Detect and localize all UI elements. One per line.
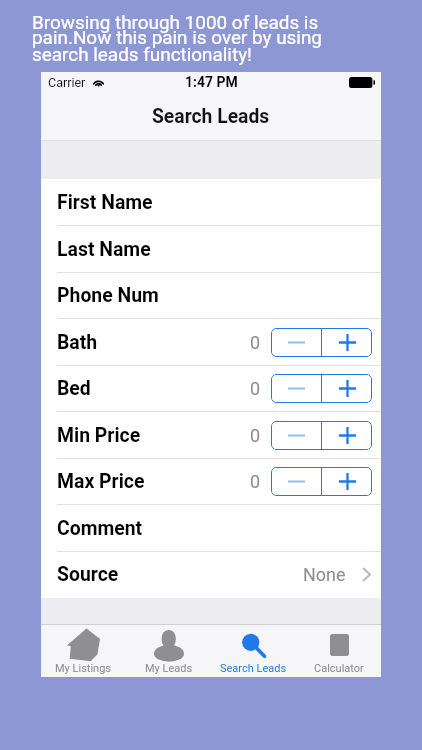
staticText: None <box>303 564 346 585</box>
staticText: Bath <box>57 331 98 354</box>
button[interactable]: Decrease <box>271 421 321 450</box>
staticText: 0 <box>250 378 261 399</box>
button[interactable]: Increase <box>322 328 372 357</box>
staticText: Bed <box>57 377 91 400</box>
staticText: Comment <box>57 517 143 540</box>
staticText: search leads functionality! <box>32 43 252 65</box>
button[interactable]: Last Name <box>41 226 381 273</box>
staticText: pain.Now this pain is over by using <box>32 26 322 48</box>
staticText: 1:47 PM <box>185 74 238 90</box>
staticText: Min Price <box>57 424 141 447</box>
button[interactable]: Calculator <box>296 625 381 677</box>
staticText: Phone Num <box>57 284 159 307</box>
staticText: Carrier <box>48 75 86 90</box>
button[interactable]: Phone Num <box>41 273 381 319</box>
button[interactable]: Increase <box>322 467 372 496</box>
button[interactable]: Source <box>41 552 381 598</box>
staticText: 0 <box>250 425 261 446</box>
staticText: My Leads <box>145 662 193 675</box>
button[interactable]: First Name <box>41 179 381 226</box>
button[interactable]: Search Leads <box>211 625 296 677</box>
button[interactable]: My Listings <box>41 625 126 677</box>
staticText: 0 <box>250 471 261 492</box>
button[interactable]: Decrease <box>271 374 321 403</box>
staticText: Max Price <box>57 470 145 493</box>
button[interactable]: Comment <box>41 505 381 552</box>
staticText: Search Leads <box>152 105 270 128</box>
button[interactable]: Decrease <box>271 467 321 496</box>
staticText: Search Leads <box>220 662 287 675</box>
staticText: 0 <box>250 332 261 353</box>
staticText: Calculator <box>314 662 364 675</box>
button[interactable]: Increase <box>322 374 372 403</box>
button[interactable]: Decrease <box>271 328 321 357</box>
staticText: Last Name <box>57 238 151 261</box>
staticText: Browsing through 1000 of leads is <box>32 11 319 33</box>
staticText: My Listings <box>55 662 112 675</box>
button[interactable]: My Leads <box>126 625 211 677</box>
staticText: Source <box>57 563 119 586</box>
button[interactable]: Increase <box>322 421 372 450</box>
staticText: First Name <box>57 191 153 214</box>
